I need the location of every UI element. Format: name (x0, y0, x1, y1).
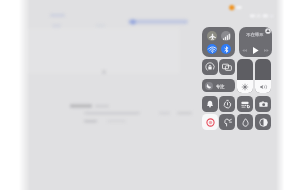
button[interactable]: Dark mode (255, 114, 271, 130)
button[interactable]: Camera (255, 96, 271, 112)
button[interactable]: Alarm (202, 96, 218, 112)
button[interactable]: Calculator (237, 96, 253, 112)
button[interactable]: Hearing (219, 114, 235, 130)
button[interactable]: Brightness (237, 59, 253, 93)
button[interactable]: Bluetooth (221, 44, 231, 54)
button[interactable]: Sound recognition (237, 114, 253, 130)
button[interactable]: Wi-Fi (207, 44, 217, 54)
button[interactable]: Focus (202, 79, 235, 92)
button[interactable]: Cellular data (221, 31, 231, 41)
button[interactable]: Screen recording (202, 114, 218, 130)
button[interactable]: Timer (219, 96, 235, 112)
button[interactable]: Volume (255, 59, 271, 93)
button[interactable]: Screen mirroring (219, 59, 235, 75)
staticText: 专注 (216, 84, 225, 89)
staticText: 不在播放 (246, 32, 264, 38)
button[interactable]: Rotation lock (202, 59, 218, 75)
button[interactable]: Airplane mode (207, 31, 217, 41)
button[interactable]: Now playing (239, 27, 272, 57)
